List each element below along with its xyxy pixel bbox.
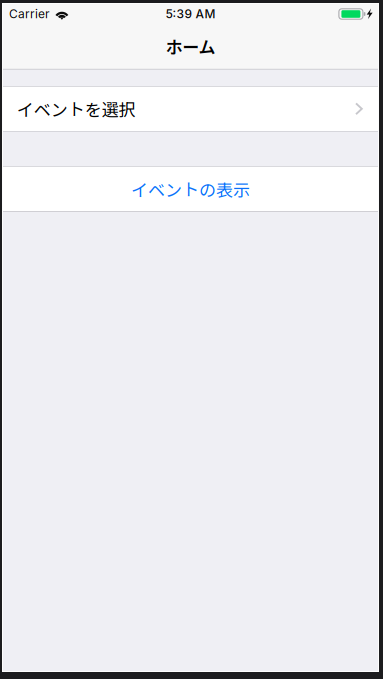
staticText: 5:39 AM xyxy=(165,7,215,21)
button[interactable]: イベントを選択 xyxy=(3,87,378,131)
staticText: ホーム xyxy=(165,34,215,59)
staticText: イベントの表示 xyxy=(131,177,250,201)
staticText: Carrier xyxy=(9,7,50,21)
button[interactable]: イベントの表示 xyxy=(3,167,378,211)
staticText: イベントを選択 xyxy=(17,97,136,121)
